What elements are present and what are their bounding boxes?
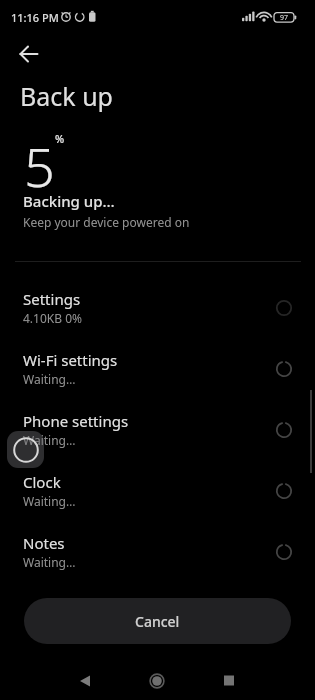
button[interactable] [205, 657, 253, 700]
staticText: Cancel [135, 612, 180, 631]
button[interactable]: Cancel [24, 598, 291, 644]
button[interactable] [7, 431, 44, 468]
staticText: Waiting… [23, 432, 76, 448]
staticText: % [55, 131, 65, 146]
button[interactable]: Settings [0, 277, 315, 338]
staticText: 4.10KB 0% [23, 310, 82, 326]
staticText: Back up [20, 79, 113, 113]
staticText: Keep your device powered on [23, 214, 190, 230]
staticText: 97 [280, 13, 289, 23]
staticText: Backing up… [23, 191, 115, 211]
staticText: Notes [23, 533, 65, 553]
button[interactable] [133, 657, 181, 700]
staticText: Waiting… [23, 554, 76, 570]
staticText: Wi-Fi settings [23, 350, 118, 370]
staticText: 5 [24, 129, 55, 203]
staticText: Clock [23, 472, 61, 492]
button[interactable]: Notes [0, 521, 315, 582]
staticText: Waiting… [23, 493, 76, 509]
button[interactable]: Phone settings [0, 399, 315, 460]
button[interactable]: Clock [0, 460, 315, 521]
staticText: Phone settings [23, 411, 129, 431]
button[interactable] [61, 657, 109, 700]
staticText: Settings [23, 289, 81, 309]
staticText: Waiting… [23, 371, 76, 387]
button[interactable] [12, 41, 46, 67]
staticText: 11:16 PM [11, 10, 59, 25]
button[interactable]: Wi-Fi settings [0, 338, 315, 399]
